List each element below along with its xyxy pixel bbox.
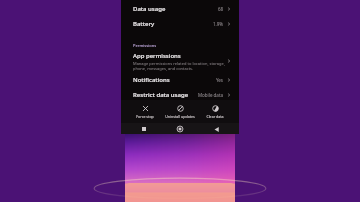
- staticText: Yes: [216, 77, 224, 83]
- button[interactable]: Force stop: [134, 104, 156, 120]
- button[interactable]: Battery: [121, 16, 239, 31]
- button[interactable]: App permissions: [121, 50, 239, 72]
- staticText: 1.9%: [213, 21, 224, 27]
- button[interactable]: Notifications: [121, 72, 239, 87]
- staticText: Clear data: [206, 114, 224, 119]
- staticText: Restrict data usage: [133, 91, 198, 99]
- staticText: Force stop: [136, 114, 154, 119]
- staticText: 68: [218, 6, 224, 12]
- staticText: Battery: [133, 20, 213, 28]
- staticText: Manage permissions related to location, …: [133, 61, 225, 71]
- staticText: Permissions: [133, 43, 157, 48]
- staticText: Mobile data: [198, 92, 224, 98]
- button[interactable]: Clear data: [204, 104, 226, 120]
- button[interactable]: Recents: [139, 124, 149, 134]
- button[interactable]: Restrict data usage: [121, 87, 239, 102]
- staticText: Data usage: [133, 5, 218, 13]
- button[interactable]: Home: [175, 124, 185, 134]
- staticText: Notifications: [133, 76, 216, 84]
- button[interactable]: Uninstall updates: [163, 104, 197, 120]
- button[interactable]: Data usage: [121, 1, 239, 16]
- staticText: Uninstall updates: [165, 114, 195, 119]
- staticText: App permissions: [133, 52, 181, 60]
- button[interactable]: Back: [211, 124, 221, 134]
